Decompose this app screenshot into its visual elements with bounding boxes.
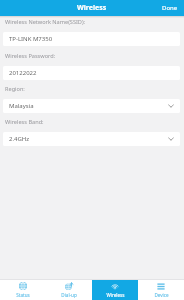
staticText: Region: bbox=[5, 85, 25, 93]
button[interactable]: 20122022 bbox=[3, 66, 180, 80]
button[interactable]: Dial-up bbox=[46, 280, 92, 300]
staticText: Device bbox=[154, 292, 169, 298]
staticText: Done bbox=[162, 4, 178, 12]
staticText: Dial-up bbox=[61, 292, 77, 298]
staticText: Wireless Band: bbox=[5, 118, 44, 126]
button[interactable]: Malaysia bbox=[3, 99, 180, 113]
staticText: Malaysia bbox=[9, 102, 34, 110]
button[interactable]: Status bbox=[0, 280, 46, 300]
staticText: 20122022 bbox=[9, 69, 37, 77]
staticText: Status bbox=[16, 292, 30, 298]
button[interactable]: 2.4GHz bbox=[3, 132, 180, 146]
staticText: TP-LINK M7350 bbox=[9, 35, 53, 43]
button[interactable]: TP-LINK M7350 bbox=[3, 32, 180, 46]
staticText: Wireless bbox=[77, 3, 107, 13]
staticText: Wireless Password: bbox=[5, 52, 56, 60]
button[interactable]: Wireless bbox=[92, 280, 138, 300]
button[interactable]: Device bbox=[138, 280, 184, 300]
staticText: Wireless bbox=[106, 292, 125, 298]
staticText: 2.4GHz bbox=[9, 135, 30, 143]
staticText: Wireless Network Name(SSID): bbox=[5, 18, 86, 26]
button[interactable]: Done bbox=[156, 2, 184, 14]
